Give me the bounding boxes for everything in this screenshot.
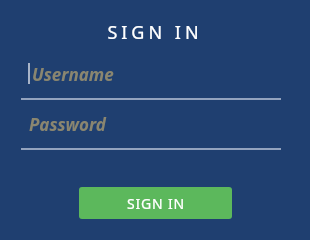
button[interactable]: Password [21,108,281,150]
staticText: Password [29,113,106,136]
staticText: Username [32,63,114,86]
staticText: SIGN IN [127,194,185,213]
button[interactable]: SIGN IN [79,187,232,219]
staticText: SIGN IN [0,20,310,45]
button[interactable]: Username [21,58,281,100]
